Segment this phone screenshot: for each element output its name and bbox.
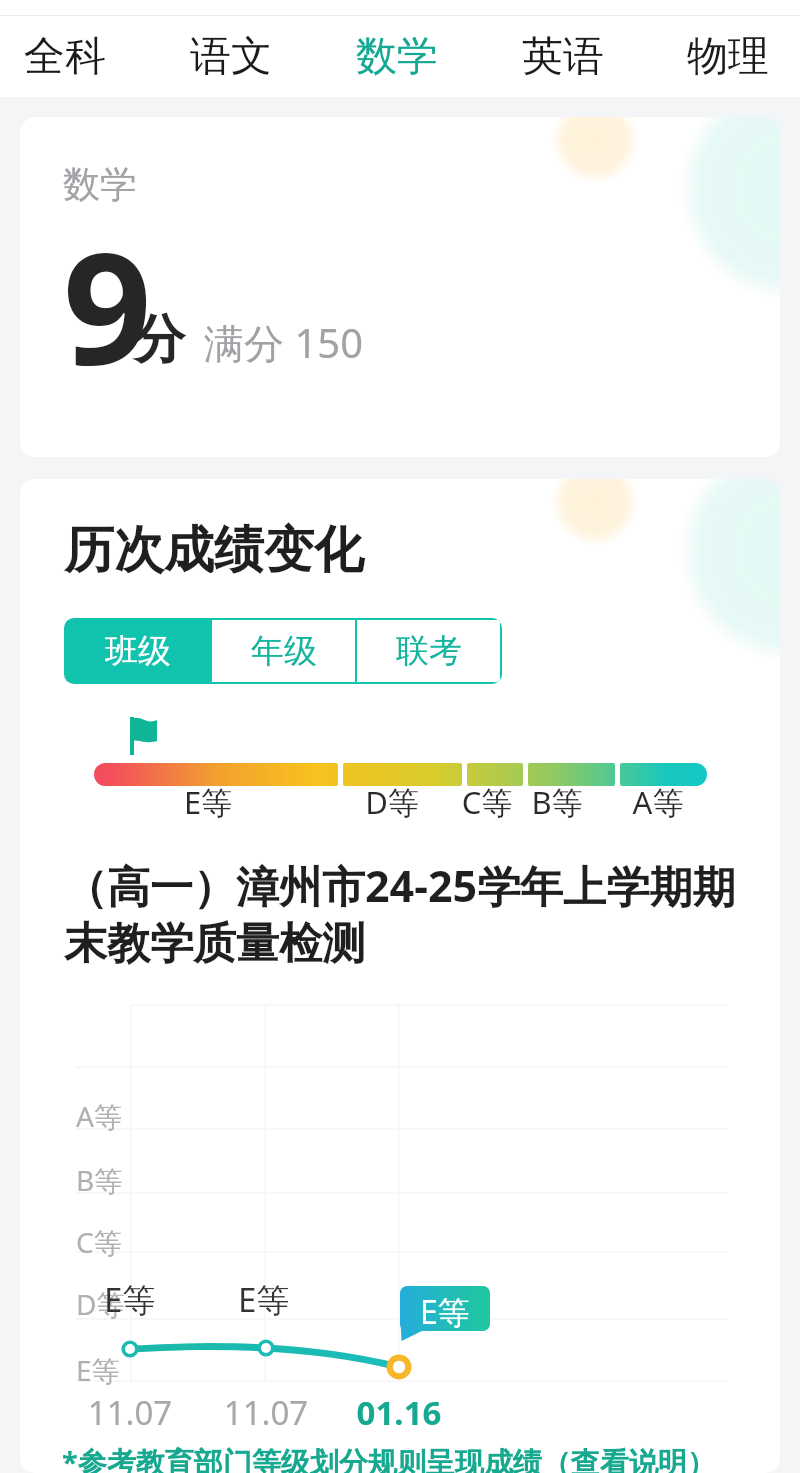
staticText: B等 bbox=[517, 781, 597, 823]
button[interactable]: 11.07 bbox=[206, 1390, 326, 1435]
button[interactable]: Exam score point bbox=[104, 1323, 156, 1375]
button[interactable]: 班级 bbox=[66, 620, 210, 682]
staticText: 满分 150 bbox=[204, 315, 364, 370]
staticText: 11.07 bbox=[206, 1390, 326, 1435]
staticText: 全科 bbox=[24, 31, 106, 83]
staticText: 数学 bbox=[356, 31, 438, 83]
button[interactable]: 全科 bbox=[0, 16, 145, 97]
button[interactable]: 年级 bbox=[212, 620, 355, 682]
staticText: 分 bbox=[133, 307, 185, 373]
staticText: A等 bbox=[618, 781, 698, 823]
staticText: D等 bbox=[76, 1285, 125, 1323]
button[interactable]: 11.07 bbox=[70, 1390, 190, 1435]
button[interactable]: *参考教育部门等级划分规则呈现成绩（查看说明） bbox=[62, 1438, 716, 1473]
staticText: 物理 bbox=[687, 31, 769, 83]
button[interactable]: Exam score point bbox=[373, 1323, 425, 1375]
staticText: 语文 bbox=[190, 31, 272, 83]
staticText: 11.07 bbox=[70, 1390, 190, 1435]
button[interactable]: 联考 bbox=[357, 620, 500, 682]
staticText: 历次成绩变化 bbox=[64, 519, 364, 582]
button[interactable]: Exam score point bbox=[240, 1323, 292, 1375]
staticText: C等 bbox=[447, 781, 527, 823]
staticText: E等 bbox=[238, 1277, 290, 1322]
staticText: 联考 bbox=[396, 630, 462, 672]
staticText: 年级 bbox=[251, 630, 317, 672]
staticText: E等 bbox=[420, 1290, 470, 1334]
staticText: C等 bbox=[76, 1223, 122, 1261]
staticText: 01.16 bbox=[339, 1390, 459, 1435]
button[interactable]: 01.16 bbox=[339, 1390, 459, 1435]
staticText: A等 bbox=[76, 1097, 122, 1135]
staticText: E等 bbox=[76, 1351, 120, 1389]
staticText: （高一）漳州市24-25学年上学期期末教学质量检测 bbox=[64, 856, 756, 971]
button[interactable]: 数学 bbox=[20, 117, 780, 457]
button[interactable]: 语文 bbox=[151, 16, 311, 97]
button[interactable]: 物理 bbox=[648, 16, 800, 97]
staticText: *参考教育部门等级划分规则呈现成绩（查看说明） bbox=[62, 1442, 716, 1473]
staticText: D等 bbox=[352, 781, 432, 823]
staticText: 数学 bbox=[63, 161, 137, 208]
staticText: 班级 bbox=[105, 630, 171, 672]
button[interactable]: 数学 bbox=[317, 16, 477, 97]
staticText: 9 bbox=[63, 199, 152, 410]
staticText: E等 bbox=[168, 781, 248, 823]
staticText: E等 bbox=[104, 1277, 156, 1322]
button[interactable]: 英语 bbox=[483, 16, 643, 97]
staticText: B等 bbox=[76, 1161, 123, 1199]
staticText: 英语 bbox=[522, 31, 604, 83]
